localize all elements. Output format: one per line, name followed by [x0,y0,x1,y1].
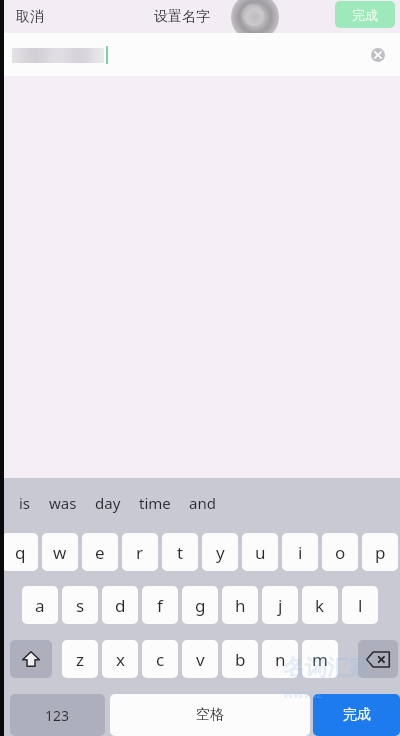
button[interactable]: r [122,533,158,571]
button[interactable]: d [102,586,138,624]
button[interactable]: e [82,533,118,571]
button[interactable]: time [130,487,180,519]
staticText: g [195,594,206,617]
button[interactable]: 完成 [313,694,400,736]
button[interactable]: 取消 [12,3,48,31]
staticText: f [157,594,163,617]
staticText: www.z [283,684,323,702]
staticText: c [156,648,165,671]
staticText: and [189,493,216,513]
button[interactable]: Backspace [358,640,398,678]
button[interactable]: t [162,533,198,571]
staticText: was [49,493,77,513]
button[interactable]: k [302,586,338,624]
staticText: x [116,648,125,671]
staticText: 123 [45,706,70,725]
staticText: j [278,594,283,617]
staticText: q [15,541,26,564]
button[interactable]: h [222,586,258,624]
button[interactable]: f [142,586,178,624]
button[interactable]: q [2,533,38,571]
staticText: i [298,541,303,564]
button[interactable]: Shift [10,640,52,678]
button[interactable]: b [222,640,258,678]
button[interactable]: is [10,487,40,519]
staticText: z [76,648,84,671]
staticText: l [358,594,363,617]
staticText: s [76,594,85,617]
staticText: v [196,648,205,671]
staticText: m [312,648,328,671]
button[interactable]: i [282,533,318,571]
staticText: 空格 [196,706,224,724]
staticText: is [19,493,31,513]
button[interactable]: z [62,640,98,678]
staticText: w [53,541,67,564]
staticText: h [235,594,246,617]
button[interactable]: 123 [10,694,105,736]
button[interactable]: p [362,533,398,571]
staticText: 完成 [343,706,371,724]
button[interactable]: y [202,533,238,571]
staticText: o [335,541,346,564]
staticText: day [95,493,121,513]
button[interactable]: n [262,640,298,678]
button[interactable]: 空格 [110,694,310,736]
button[interactable]: x [102,640,138,678]
button[interactable]: day [86,487,130,519]
staticText: u [255,541,266,564]
staticText: 完成 [352,7,378,23]
staticText: y [216,541,225,564]
button[interactable]: u [242,533,278,571]
button[interactable]: v [182,640,218,678]
staticText: time [139,493,171,513]
staticText: a [35,594,45,617]
button[interactable]: c [142,640,178,678]
button[interactable]: Clear text [0,33,400,76]
staticText: e [95,541,105,564]
button[interactable]: l [342,586,378,624]
staticText: 设置名字 [154,8,210,26]
button[interactable]: w [42,533,78,571]
staticText: t [177,541,184,564]
button[interactable]: j [262,586,298,624]
staticText: n [275,648,286,671]
button[interactable]: g [182,586,218,624]
staticText: d [115,594,126,617]
button[interactable]: and [180,487,225,519]
button[interactable]: o [322,533,358,571]
staticText: r [136,541,144,564]
button[interactable]: Clear text [366,43,390,67]
staticText: 名词汇家 [283,654,371,682]
staticText: 取消 [16,8,44,26]
button[interactable]: m [302,640,338,678]
staticText: b [235,648,246,671]
button[interactable]: was [40,487,86,519]
button[interactable]: 完成 [335,1,395,28]
staticText: p [375,541,386,564]
button[interactable]: s [62,586,98,624]
button[interactable]: a [22,586,58,624]
staticText: k [315,594,325,617]
